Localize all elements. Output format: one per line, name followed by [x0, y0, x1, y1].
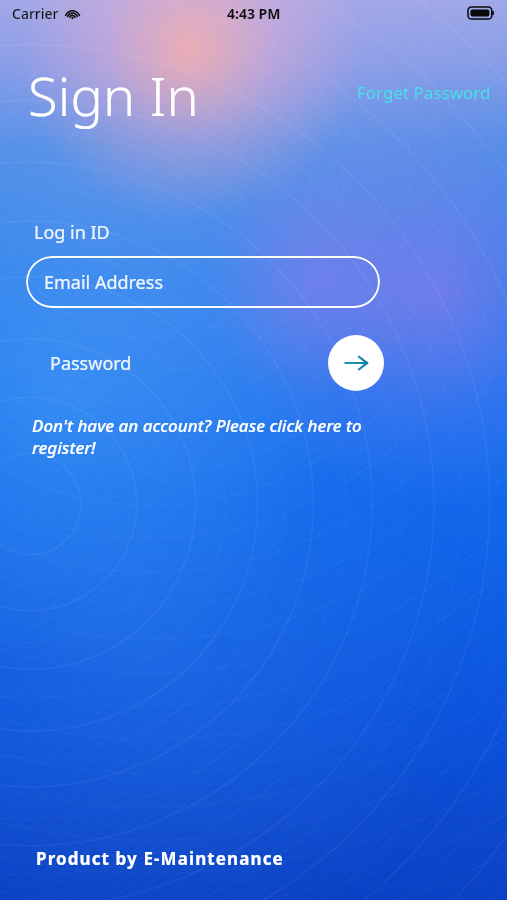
staticText: 4:43 PM	[227, 4, 281, 23]
staticText: Log in ID	[34, 220, 110, 245]
staticText: Sign In	[28, 58, 199, 132]
button[interactable]: Email Address	[26, 256, 380, 308]
staticText: Email Address	[44, 270, 164, 295]
button[interactable]: Password	[26, 337, 326, 389]
staticText: Forget Password	[357, 81, 491, 104]
staticText: Product by E-Maintenance	[36, 847, 284, 870]
button[interactable]: Forget Password	[353, 78, 495, 107]
button[interactable]: Don't have an account? Please click here…	[28, 412, 417, 461]
staticText: Carrier	[12, 4, 59, 23]
staticText: Password	[50, 351, 132, 376]
staticText: Don't have an account? Please click here…	[32, 414, 413, 459]
button[interactable]: Sign in	[328, 335, 384, 391]
